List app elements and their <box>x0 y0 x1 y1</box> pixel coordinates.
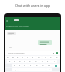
staticText: m <box>48 64 51 67</box>
staticText: g <box>29 60 31 63</box>
staticText: Support for our team <box>6 25 29 28</box>
button[interactable]: b <box>34 64 40 67</box>
staticText: i <box>45 56 46 59</box>
button[interactable]: t <box>25 56 30 59</box>
button[interactable]: o <box>48 56 54 59</box>
button[interactable]: Sent message <box>38 40 52 45</box>
button[interactable]: a <box>7 60 12 63</box>
staticText: o <box>50 56 52 59</box>
button[interactable]: Back <box>6 20 8 22</box>
staticText: q <box>7 56 9 59</box>
staticText: a <box>9 60 11 63</box>
staticText: z <box>14 64 16 67</box>
button[interactable]: Backspace <box>52 64 60 67</box>
staticText: Type a message <box>8 52 25 55</box>
button[interactable]: y <box>30 56 36 59</box>
button[interactable]: g <box>27 60 33 63</box>
button[interactable]: s <box>12 60 17 63</box>
staticText: n <box>42 64 44 67</box>
button[interactable]: m <box>46 64 52 67</box>
staticText: f <box>24 60 25 63</box>
button[interactable]: Type a message <box>5 51 60 55</box>
button[interactable]: r <box>20 56 25 59</box>
button[interactable]: v <box>28 64 34 67</box>
staticText: l <box>54 60 55 63</box>
staticText: c <box>24 64 26 67</box>
staticText: v <box>30 64 32 67</box>
button[interactable]: k <box>45 60 51 63</box>
staticText: y <box>32 56 34 59</box>
button[interactable]: x <box>17 64 22 67</box>
staticText: Chat with users in app <box>0 3 65 7</box>
staticText: r <box>22 56 23 59</box>
staticText: e <box>17 56 19 59</box>
button[interactable]: i <box>42 56 48 59</box>
button[interactable]: n <box>40 64 46 67</box>
button[interactable]: Received message <box>7 32 16 35</box>
button[interactable]: p <box>54 56 60 59</box>
button[interactable]: f <box>22 60 27 63</box>
button[interactable]: u <box>36 56 42 59</box>
button[interactable]: l <box>51 60 57 63</box>
button[interactable]: z <box>12 64 17 67</box>
staticText: , <box>15 68 16 71</box>
button[interactable]: c <box>22 64 28 67</box>
staticText: h <box>35 60 37 63</box>
staticText: . <box>49 68 50 71</box>
button[interactable]: Conversation title <box>14 19 19 21</box>
staticText: p <box>56 56 58 59</box>
button[interactable]: w <box>10 56 15 59</box>
button[interactable]: e <box>15 56 20 59</box>
staticText: j <box>42 60 43 63</box>
staticText: u <box>38 56 40 59</box>
button[interactable]: Send <box>56 52 58 54</box>
button[interactable]: d <box>17 60 22 63</box>
staticText: t <box>27 56 28 59</box>
staticText: w <box>12 56 14 59</box>
button[interactable]: q <box>5 56 10 59</box>
staticText: d <box>19 60 21 63</box>
button[interactable]: , <box>12 68 18 71</box>
staticText: b <box>36 64 38 67</box>
staticText: x <box>19 64 21 67</box>
button[interactable]: h <box>33 60 39 63</box>
button[interactable]: j <box>39 60 45 63</box>
staticText: s <box>14 60 16 63</box>
staticText: k <box>47 60 49 63</box>
